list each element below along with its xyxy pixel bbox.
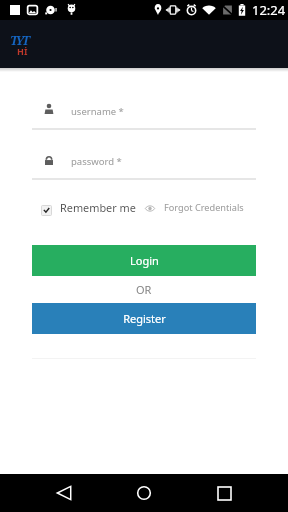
button[interactable]: Remember me: [41, 203, 136, 218]
button[interactable]: username *: [32, 101, 256, 130]
button[interactable]: password *: [32, 151, 256, 180]
button[interactable]: Home: [125, 474, 163, 512]
staticText: Forgot Credentials: [164, 201, 244, 214]
staticText: password *: [71, 155, 122, 168]
staticText: Register: [123, 311, 166, 326]
staticText: Hİ: [17, 45, 28, 57]
staticText: TYT: [10, 32, 28, 49]
staticText: OR: [136, 282, 152, 297]
staticText: Login: [130, 253, 159, 268]
staticText: Remember me: [60, 200, 136, 215]
button[interactable]: Recents: [205, 474, 243, 512]
staticText: 12:24: [252, 1, 286, 19]
staticText: username *: [71, 105, 124, 118]
other: Forgot Credentials: [145, 205, 155, 212]
button[interactable]: Forgot Credentials: [145, 202, 244, 215]
button[interactable]: Login: [32, 245, 256, 276]
button[interactable]: Back: [45, 474, 83, 512]
button[interactable]: Register: [32, 303, 256, 334]
